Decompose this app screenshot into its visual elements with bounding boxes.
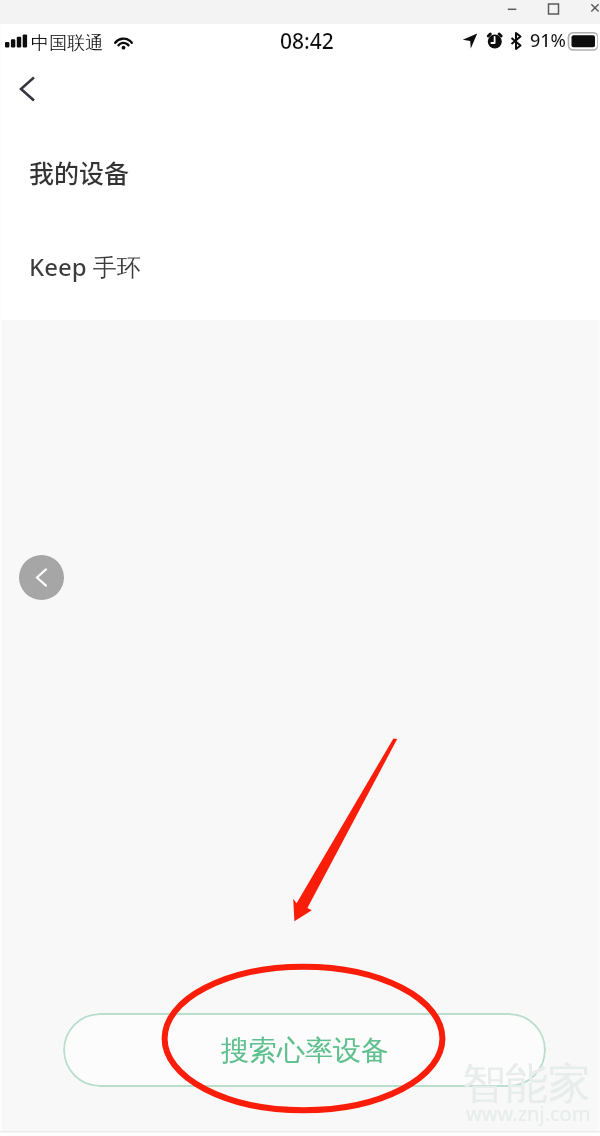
button[interactable]: Back — [9, 71, 45, 107]
staticText: Keep 手环 — [29, 250, 141, 283]
button[interactable]: Minimize — [497, 0, 525, 24]
staticText: 智能家 — [462, 1057, 591, 1111]
staticText: 08:42 — [280, 27, 334, 56]
staticText: 搜索心率设备 — [221, 1033, 389, 1068]
button[interactable]: Close — [581, 0, 600, 24]
staticText: www.znj.com — [466, 1100, 591, 1127]
staticText: 中国联通 — [31, 32, 103, 55]
staticText: 我的设备 — [29, 154, 130, 190]
button[interactable]: 搜索心率设备 — [63, 1013, 546, 1087]
button[interactable]: Previous — [19, 555, 64, 600]
staticText: 91% — [530, 28, 566, 53]
button[interactable]: Maximize — [539, 0, 567, 24]
